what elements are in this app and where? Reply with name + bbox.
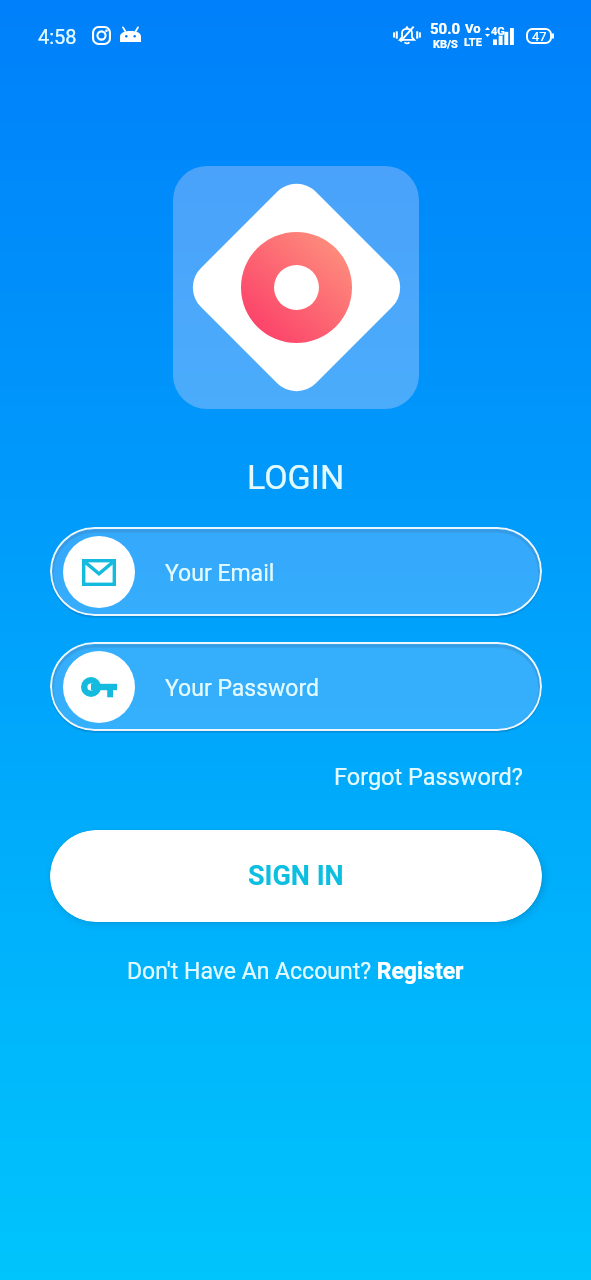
staticText: 50.0 [430, 20, 461, 38]
button[interactable]: Don't Have An Account? Register [127, 958, 464, 985]
staticText: LOGIN [247, 457, 345, 497]
staticText: Vo [465, 21, 481, 36]
staticText: SIGN IN [248, 860, 344, 892]
button[interactable]: Your Password [50, 642, 542, 731]
button[interactable]: Your Email [50, 527, 542, 616]
staticText: 4:58 [38, 25, 77, 48]
staticText: Your Password [165, 675, 319, 702]
staticText: KB/S [433, 38, 458, 51]
staticText: Your Email [165, 560, 275, 587]
button[interactable]: SIGN IN [50, 830, 542, 922]
staticText: LTE [464, 36, 482, 49]
staticText: 47 [532, 29, 547, 44]
staticText: 4G [491, 25, 505, 38]
button[interactable]: Forgot Password? [334, 763, 523, 791]
